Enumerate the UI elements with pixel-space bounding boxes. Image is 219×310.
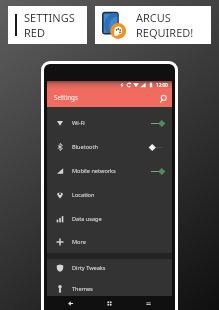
staticText: RED — [24, 25, 45, 40]
button[interactable]: ARCUS — [95, 6, 211, 44]
button[interactable]: Home — [104, 298, 115, 309]
button[interactable]: SETTINGS — [8, 6, 87, 44]
staticText: Settings — [54, 93, 78, 102]
staticText: Dirty Tweaks — [72, 264, 106, 272]
staticText: SETTINGS — [24, 10, 75, 25]
button[interactable]: Mobile networks — [47, 159, 172, 183]
button[interactable]: Recents — [143, 298, 154, 309]
button[interactable]: Back — [65, 298, 76, 309]
staticText: Location — [72, 191, 95, 199]
staticText: Bluetooth — [72, 143, 98, 151]
button[interactable]: Themes — [47, 281, 172, 296]
staticText: Data usage — [72, 215, 102, 223]
staticText: Themes — [72, 285, 93, 293]
button[interactable]: Wi-Fi — [47, 111, 172, 135]
button[interactable]: Location — [47, 183, 172, 207]
staticText: 12:00 — [156, 82, 168, 88]
staticText: Mobile networks — [72, 167, 116, 175]
staticText: Wi-Fi — [72, 119, 85, 127]
button[interactable]: Search — [158, 94, 168, 104]
staticText: More — [72, 238, 86, 246]
button[interactable]: Bluetooth — [47, 135, 172, 159]
button[interactable]: More — [47, 231, 172, 253]
button[interactable]: Data usage — [47, 207, 172, 231]
staticText: ARCUS — [136, 10, 171, 25]
staticText: REQUIRED! — [136, 25, 194, 40]
button[interactable]: Dirty Tweaks — [47, 259, 172, 276]
